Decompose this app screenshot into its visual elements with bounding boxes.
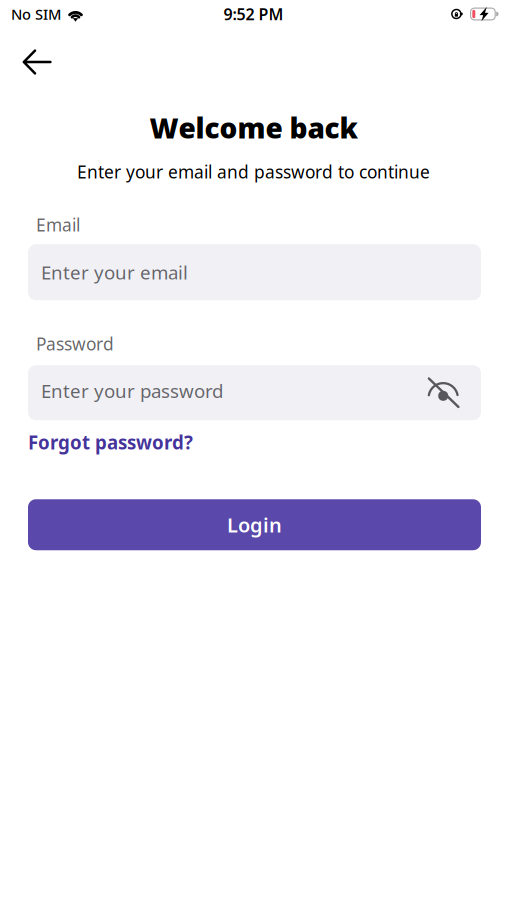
staticText: Enter your email	[41, 260, 188, 285]
button[interactable]: Email, Enter your email	[28, 244, 481, 300]
staticText: Login	[227, 511, 282, 538]
button[interactable]: Login	[28, 499, 481, 550]
staticText: Email	[36, 213, 80, 236]
staticText: No SIM	[11, 4, 61, 24]
staticText: Password	[36, 332, 114, 355]
button[interactable]: Forgot password?	[28, 428, 193, 456]
staticText: 9:52 PM	[223, 3, 283, 25]
staticText: Enter your email and password to continu…	[77, 160, 430, 183]
button[interactable]: Show password	[424, 373, 464, 413]
button[interactable]: Back	[12, 28, 62, 92]
button[interactable]: Password, Enter your password	[41, 365, 424, 420]
staticText: Welcome back	[149, 109, 357, 146]
staticText: Forgot password?	[28, 430, 193, 455]
staticText: Enter your password	[41, 378, 223, 403]
